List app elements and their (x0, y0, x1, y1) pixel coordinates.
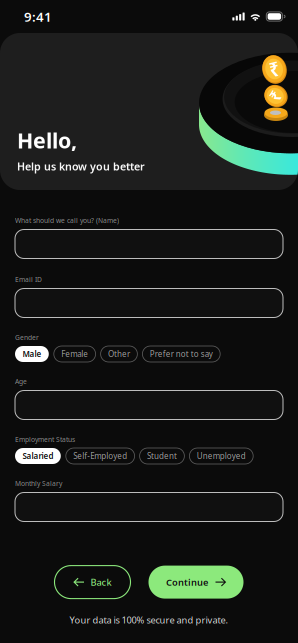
staticText: Hello, (17, 126, 77, 154)
button[interactable]: Prefer not to say (142, 346, 220, 362)
staticText: Salaried (22, 451, 53, 461)
staticText: Employment Status (15, 435, 75, 444)
button[interactable]: Continue (148, 566, 243, 599)
button[interactable]: Student (140, 448, 184, 464)
staticText: Prefer not to say (150, 349, 213, 359)
button[interactable] (15, 390, 283, 419)
staticText: Email ID (15, 275, 42, 284)
staticText: 9:41 (24, 8, 52, 25)
button[interactable]: Unemployed (189, 448, 253, 464)
staticText: Self-Employed (73, 451, 127, 461)
staticText: What should we call you? (Name) (15, 216, 119, 225)
staticText: Student (147, 451, 177, 461)
staticText: Age (15, 377, 27, 386)
button[interactable] (15, 492, 283, 521)
staticText: ₹ (269, 55, 280, 82)
staticText: ₹ (271, 85, 280, 106)
staticText: Unemployed (197, 451, 246, 461)
staticText: Back (90, 576, 111, 588)
button[interactable]: Female (54, 346, 96, 362)
button[interactable]: Self-Employed (66, 448, 135, 464)
button[interactable]: Back (54, 566, 130, 599)
staticText: Your data is 100% secure and private. (69, 614, 228, 626)
button[interactable]: Male (15, 346, 49, 362)
staticText: Gender (15, 333, 39, 342)
staticText: Male (22, 349, 41, 359)
staticText: Other (108, 349, 130, 359)
button[interactable] (15, 288, 283, 317)
button[interactable]: Salaried (15, 448, 61, 464)
staticText: Female (61, 349, 88, 359)
staticText: Help us know you better (17, 159, 145, 173)
button[interactable]: Other (101, 346, 137, 362)
staticText: Monthly Salary (15, 479, 62, 488)
staticText: Continue (166, 576, 208, 588)
button[interactable] (15, 229, 283, 258)
